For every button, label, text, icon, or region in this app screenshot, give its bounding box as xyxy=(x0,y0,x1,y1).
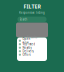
staticText: Responsive listing xyxy=(19,11,45,14)
button[interactable]: Delivery xyxy=(17,49,47,53)
staticText: Open now xyxy=(22,37,30,44)
button[interactable]: Nearby xyxy=(17,46,47,49)
staticText: Offers xyxy=(22,53,30,56)
staticText: Nearby xyxy=(22,46,31,49)
button[interactable]: Offers xyxy=(17,53,47,56)
button[interactable]: Search xyxy=(17,17,46,22)
staticText: Delivery xyxy=(22,49,33,53)
button[interactable]: Open now xyxy=(17,39,47,42)
staticText: Top rated xyxy=(22,42,35,46)
button[interactable]: Top rated xyxy=(17,42,47,46)
staticText: Results xyxy=(27,35,37,39)
staticText: FILTER xyxy=(23,3,40,10)
staticText: Search xyxy=(19,18,27,21)
